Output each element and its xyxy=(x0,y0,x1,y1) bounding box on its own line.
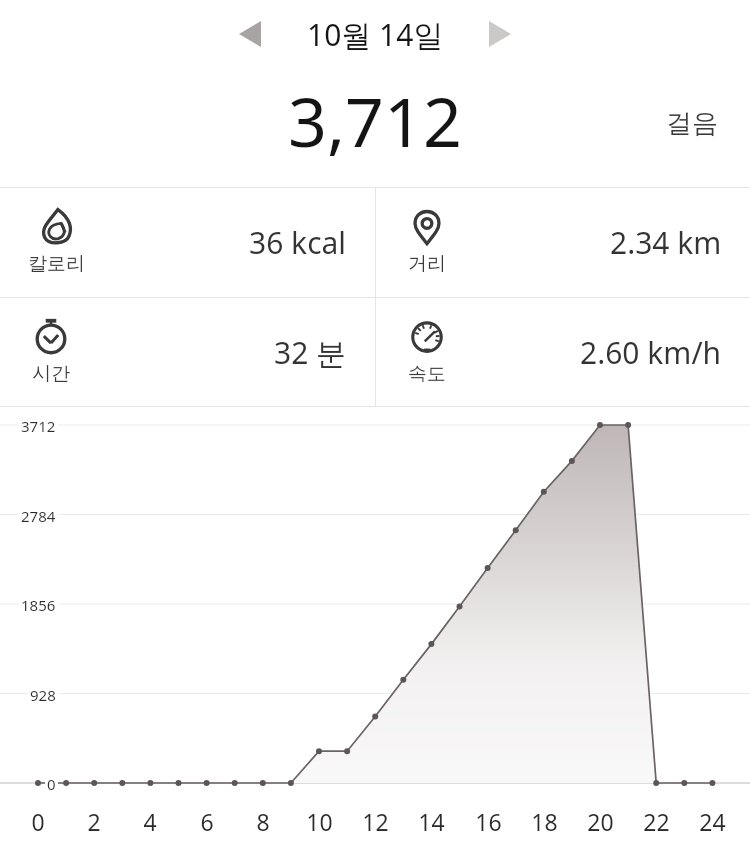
staticText: 10 xyxy=(306,806,333,837)
staticText: 2.34 km xyxy=(610,222,722,263)
staticText: 22 xyxy=(643,806,670,837)
staticText: 24 xyxy=(699,806,726,837)
staticText: 6 xyxy=(200,806,214,837)
staticText: 14 xyxy=(418,806,445,837)
staticText: 2.60 km/h xyxy=(580,332,722,373)
staticText: 12 xyxy=(362,806,389,837)
staticText: 20 xyxy=(587,806,614,837)
button[interactable]: 시간 xyxy=(0,298,375,406)
staticText: 1856 xyxy=(21,595,56,615)
staticText: 0 xyxy=(31,806,45,837)
staticText: 32 분 xyxy=(274,332,347,373)
staticText: 4 xyxy=(143,806,157,837)
staticText: 속도 xyxy=(408,362,446,386)
button[interactable]: 칼로리 xyxy=(0,188,375,297)
button[interactable]: Next day xyxy=(472,6,528,62)
staticText: 0 xyxy=(47,774,56,794)
staticText: 8 xyxy=(256,806,270,837)
staticText: 16 xyxy=(475,806,502,837)
staticText: 3712 xyxy=(21,416,56,436)
staticText: 거리 xyxy=(408,252,446,276)
staticText: 928 xyxy=(30,685,56,705)
button[interactable]: 속도 xyxy=(376,298,750,406)
staticText: 18 xyxy=(531,806,558,837)
staticText: 10월 14일 xyxy=(307,14,444,55)
button[interactable]: Previous day xyxy=(222,6,278,62)
staticText: 2784 xyxy=(21,506,56,526)
staticText: 걸음 xyxy=(666,107,718,140)
staticText: 칼로리 xyxy=(28,252,85,276)
staticText: 시간 xyxy=(32,362,70,386)
button[interactable]: 거리 xyxy=(376,188,750,297)
staticText: 3,712 xyxy=(288,74,462,164)
staticText: 36 kcal xyxy=(249,222,347,263)
staticText: 2 xyxy=(87,806,101,837)
